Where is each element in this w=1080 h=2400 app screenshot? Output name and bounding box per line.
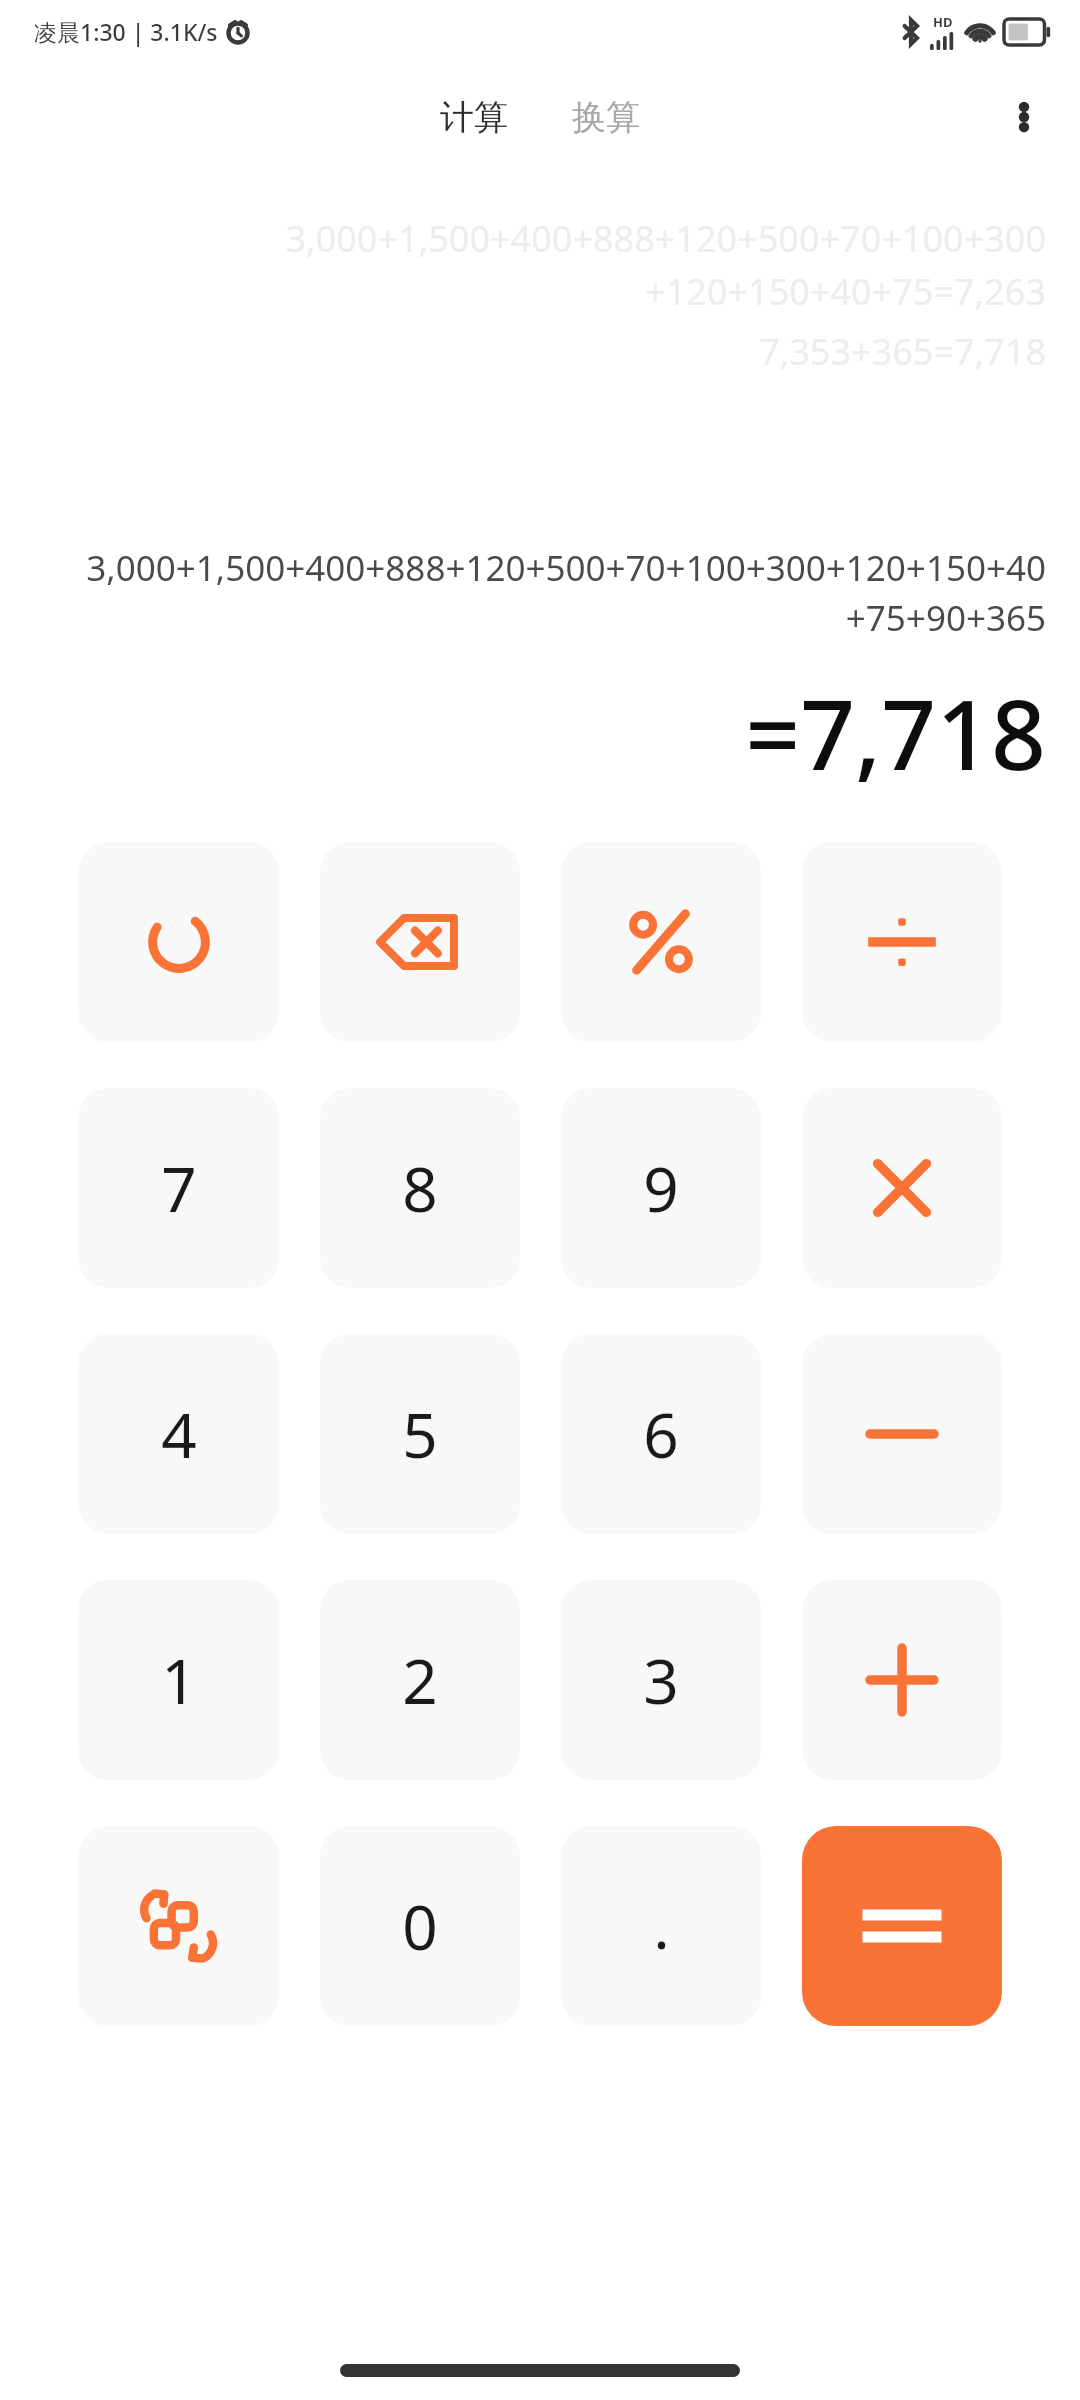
staticText: 5 [402, 1392, 438, 1476]
button[interactable]: 9 [561, 1088, 761, 1288]
staticText: . [653, 1885, 670, 1967]
button[interactable]: Backspace [320, 842, 520, 1042]
staticText: 0 [402, 1884, 438, 1968]
button[interactable]: 8 [320, 1088, 520, 1288]
staticText: 计算 [440, 96, 508, 139]
staticText: 2 [402, 1638, 438, 1722]
button[interactable]: 4 [78, 1334, 279, 1534]
other: Backspace [320, 842, 520, 1042]
button[interactable]: 5 [320, 1334, 520, 1534]
button[interactable]: Plus [802, 1580, 1002, 1780]
staticText: 3,000+1,500+400+888+120+500+70+100+300+1… [34, 544, 1046, 641]
button[interactable]: . [561, 1826, 761, 2026]
button[interactable]: Multiply [802, 1088, 1002, 1288]
staticText: 1 [161, 1638, 197, 1722]
button[interactable]: Equals [802, 1826, 1002, 2026]
other: Clear [78, 842, 279, 1042]
button[interactable]: 1 [78, 1580, 279, 1780]
button[interactable]: More options [988, 81, 1060, 153]
staticText: 8 [402, 1146, 438, 1230]
staticText: 3 [643, 1638, 679, 1722]
staticText: =7,718 [34, 667, 1046, 798]
button[interactable]: Percent [561, 842, 761, 1042]
staticText: 凌晨1:30 | 3.1K/s [34, 16, 218, 47]
other: Plus [802, 1580, 1002, 1780]
button[interactable]: Minus [802, 1334, 1002, 1534]
staticText: 9 [643, 1146, 679, 1230]
other: Unit conversion [78, 1826, 279, 2026]
other: Minus [802, 1334, 1002, 1534]
staticText: HD [933, 13, 953, 31]
other: Percent [561, 842, 761, 1042]
other: Multiply [802, 1088, 1002, 1288]
staticText: 6 [643, 1392, 679, 1476]
staticText: 4 [161, 1392, 197, 1476]
staticText: 7,353+365=7,718 [34, 327, 1046, 376]
staticText: 3,000+1,500+400+888+120+500+70+100+300 +… [34, 214, 1046, 315]
button[interactable]: Clear [78, 842, 279, 1042]
button[interactable]: 计算 [430, 90, 518, 145]
button[interactable]: 0 [320, 1826, 520, 2026]
button[interactable]: Unit conversion [78, 1826, 279, 2026]
button[interactable]: Divide [802, 842, 1002, 1042]
button[interactable]: 6 [561, 1334, 761, 1534]
staticText: 换算 [572, 96, 640, 139]
button[interactable]: 3 [561, 1580, 761, 1780]
other: Divide [802, 842, 1002, 1042]
button[interactable]: 2 [320, 1580, 520, 1780]
button[interactable]: 换算 [562, 90, 650, 145]
staticText: 7 [161, 1146, 197, 1230]
button[interactable]: 7 [78, 1088, 279, 1288]
